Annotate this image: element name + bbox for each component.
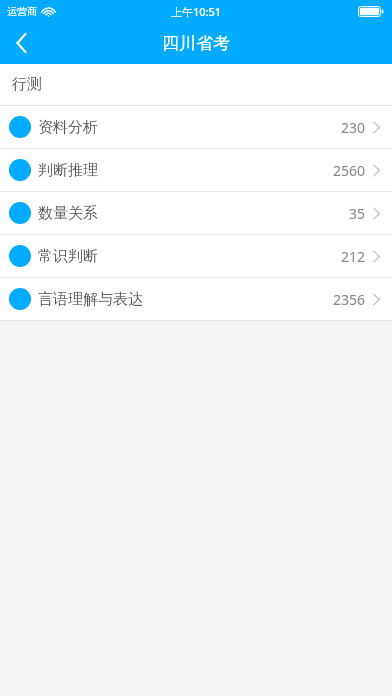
button[interactable]: 资料分析 <box>0 106 392 148</box>
staticText: 2356 <box>333 290 366 309</box>
button[interactable]: 判断推理 <box>0 149 392 191</box>
staticText: 四川省考 <box>162 33 230 54</box>
staticText: 35 <box>349 204 366 223</box>
button[interactable]: 数量关系 <box>0 192 392 234</box>
staticText: 资料分析 <box>38 118 98 137</box>
staticText: 数量关系 <box>38 204 98 223</box>
button[interactable]: 言语理解与表达 <box>0 278 392 320</box>
staticText: 2560 <box>333 161 366 180</box>
staticText: 言语理解与表达 <box>38 290 143 309</box>
staticText: 行测 <box>12 75 42 94</box>
staticText: 上午10:51 <box>171 4 222 19</box>
staticText: 230 <box>341 118 366 137</box>
staticText: 运营商 <box>7 5 37 18</box>
button[interactable]: Back <box>0 22 44 64</box>
staticText: 判断推理 <box>38 161 98 180</box>
staticText: 212 <box>341 247 366 266</box>
button[interactable]: 常识判断 <box>0 235 392 277</box>
staticText: 常识判断 <box>38 247 98 266</box>
